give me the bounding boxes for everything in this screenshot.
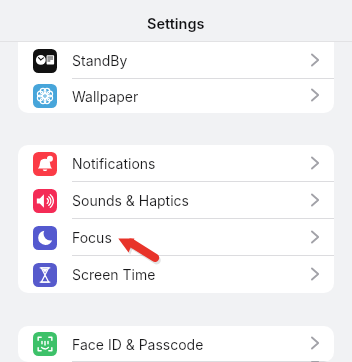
staticText: Face ID & Passcode: [72, 336, 204, 353]
staticText: Settings: [147, 15, 205, 33]
staticText: Notifications: [72, 155, 156, 172]
staticText: Focus: [72, 229, 112, 246]
staticText: Sounds & Haptics: [72, 192, 189, 209]
staticText: Wallpaper: [72, 88, 139, 105]
button[interactable]: Sounds & Haptics: [18, 182, 334, 219]
button[interactable]: Face ID & Passcode: [18, 326, 334, 362]
button[interactable]: Screen Time: [18, 256, 334, 293]
button[interactable]: Focus: [18, 219, 334, 256]
staticText: StandBy: [72, 52, 128, 69]
staticText: Screen Time: [72, 266, 156, 283]
button[interactable]: Notifications: [18, 145, 334, 182]
button[interactable]: StandBy: [18, 42, 334, 79]
button[interactable]: Wallpaper: [18, 79, 334, 113]
